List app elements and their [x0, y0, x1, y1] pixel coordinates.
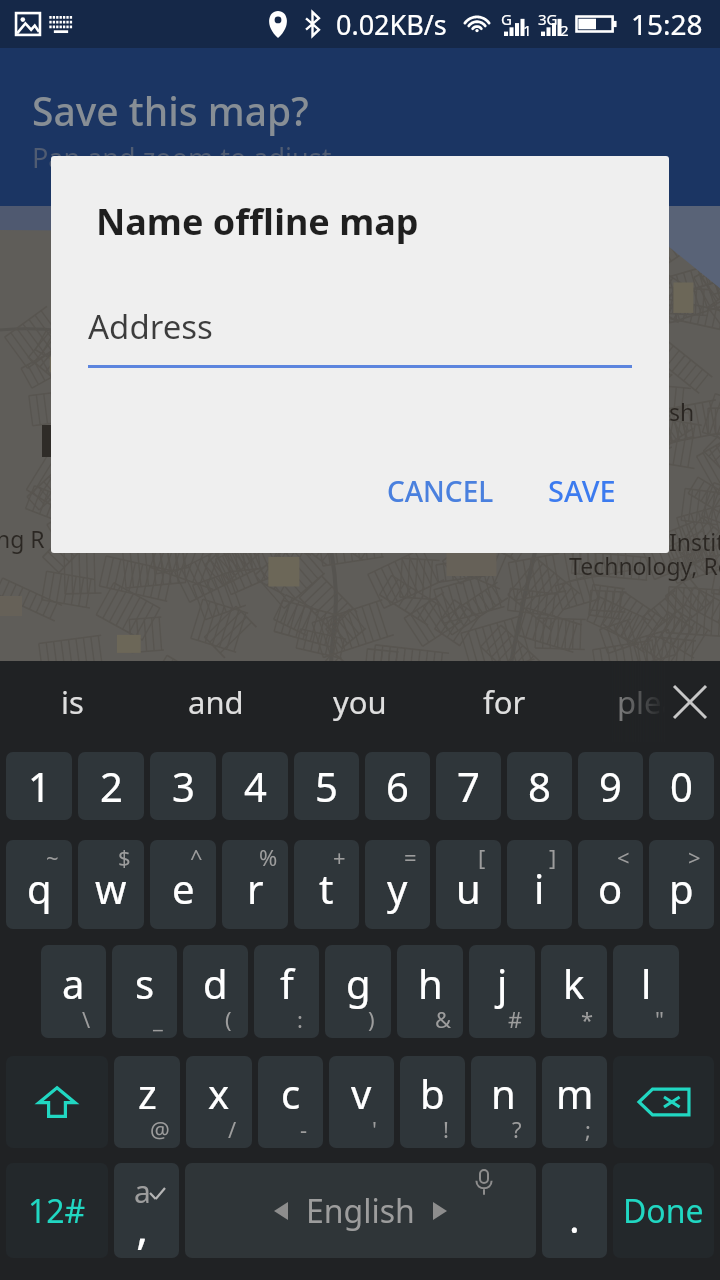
- staticText: 3: [172, 759, 195, 813]
- staticText: _: [153, 1004, 163, 1034]
- button[interactable]: ": [613, 945, 679, 1038]
- button[interactable]: -: [258, 1056, 323, 1148]
- button[interactable]: Shift: [6, 1056, 108, 1148]
- button[interactable]: Hide suggestions: [660, 661, 720, 742]
- staticText: [: [478, 842, 486, 872]
- button[interactable]: @: [114, 1056, 180, 1148]
- staticText: y: [387, 861, 408, 915]
- staticText: 0.02KB/s: [336, 6, 447, 43]
- button[interactable]: <: [578, 840, 643, 929]
- staticText: 1: [523, 20, 532, 40]
- button[interactable]: 3: [150, 752, 216, 820]
- staticText: b: [420, 1066, 445, 1120]
- staticText: r: [247, 861, 264, 915]
- button[interactable]: CANCEL: [372, 460, 509, 522]
- button[interactable]: #: [469, 945, 535, 1038]
- staticText: 12#: [28, 1189, 86, 1233]
- button[interactable]: [: [436, 840, 501, 929]
- button[interactable]: ': [329, 1056, 394, 1148]
- button[interactable]: +: [294, 840, 359, 929]
- staticText: n: [491, 1066, 516, 1120]
- staticText: +: [333, 842, 346, 872]
- staticText: 7: [457, 759, 480, 813]
- button[interactable]: _: [112, 945, 177, 1038]
- staticText: English: [306, 1189, 415, 1233]
- staticText: ng R: [0, 523, 45, 554]
- button[interactable]: 2: [78, 752, 144, 820]
- staticText: 2: [560, 20, 569, 40]
- staticText: e: [172, 861, 195, 915]
- staticText: Institu: [669, 526, 720, 557]
- button[interactable]: Period: [542, 1163, 607, 1258]
- staticText: $: [118, 842, 131, 872]
- staticText: u: [456, 861, 481, 915]
- button[interactable]: 9: [578, 752, 643, 820]
- button[interactable]: ~: [6, 840, 72, 929]
- button[interactable]: !: [400, 1056, 465, 1148]
- button[interactable]: %: [222, 840, 288, 929]
- staticText: is: [61, 681, 84, 723]
- staticText: Done: [623, 1189, 704, 1233]
- button[interactable]: English: [185, 1163, 536, 1258]
- button[interactable]: >: [649, 840, 714, 929]
- button[interactable]: Comma: [114, 1163, 179, 1258]
- staticText: SAVE: [548, 471, 616, 510]
- button[interactable]: 4: [222, 752, 288, 820]
- staticText: !: [443, 1114, 449, 1144]
- button[interactable]: ): [325, 945, 391, 1038]
- staticText: c: [281, 1066, 301, 1120]
- staticText: %: [259, 842, 278, 872]
- staticText: you: [333, 681, 387, 723]
- staticText: g: [346, 956, 371, 1010]
- staticText: <: [617, 842, 630, 872]
- button[interactable]: :: [254, 945, 319, 1038]
- button[interactable]: 6: [365, 752, 430, 820]
- staticText: ': [372, 1114, 377, 1144]
- button[interactable]: Done: [613, 1163, 714, 1258]
- button[interactable]: &: [397, 945, 463, 1038]
- button[interactable]: 5: [294, 752, 359, 820]
- staticText: ): [368, 1004, 375, 1034]
- button[interactable]: is: [0, 661, 144, 742]
- button[interactable]: you: [288, 661, 432, 742]
- staticText: 9: [599, 759, 622, 813]
- staticText: &: [435, 1004, 452, 1034]
- staticText: ;: [585, 1114, 591, 1144]
- staticText: #: [508, 1004, 523, 1034]
- staticText: .: [569, 1190, 580, 1244]
- button[interactable]: for: [432, 661, 576, 742]
- staticText: a: [134, 1171, 151, 1212]
- button[interactable]: /: [186, 1056, 252, 1148]
- button[interactable]: =: [365, 840, 430, 929]
- button[interactable]: 7: [436, 752, 501, 820]
- other: Keyboard: [49, 16, 73, 32]
- button[interactable]: 8: [507, 752, 572, 820]
- staticText: p: [669, 861, 694, 915]
- button[interactable]: \: [41, 945, 106, 1038]
- button[interactable]: ?: [471, 1056, 536, 1148]
- button[interactable]: SAVE: [533, 459, 631, 522]
- staticText: 15:28: [631, 5, 703, 43]
- staticText: ^: [190, 842, 203, 872]
- button[interactable]: 12#: [6, 1163, 108, 1258]
- button[interactable]: *: [541, 945, 607, 1038]
- button[interactable]: 0: [649, 752, 714, 820]
- button[interactable]: ]: [507, 840, 572, 929]
- button[interactable]: and: [144, 661, 288, 742]
- staticText: m: [556, 1066, 594, 1120]
- staticText: Pan and zoom to adjust: [32, 139, 332, 176]
- staticText: (: [225, 1004, 232, 1034]
- staticText: o: [598, 861, 623, 915]
- button[interactable]: 1: [6, 752, 72, 820]
- staticText: CANCEL: [387, 472, 494, 510]
- button[interactable]: $: [78, 840, 144, 929]
- button[interactable]: ^: [150, 840, 216, 929]
- staticText: ": [655, 1004, 664, 1034]
- button[interactable]: Backspace: [613, 1056, 714, 1148]
- button[interactable]: ;: [542, 1056, 607, 1148]
- staticText: f: [280, 956, 294, 1010]
- button[interactable]: plea: [576, 661, 720, 742]
- staticText: Technology, Rou: [569, 550, 720, 581]
- button[interactable]: (: [183, 945, 248, 1038]
- staticText: a: [62, 956, 85, 1010]
